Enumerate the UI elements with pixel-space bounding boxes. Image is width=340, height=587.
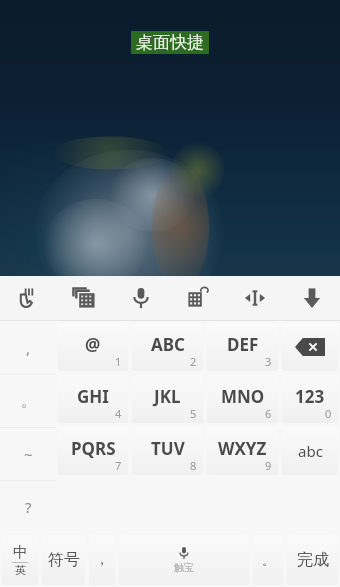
- staticText: abc: [298, 441, 323, 461]
- staticText: ABC: [151, 333, 185, 356]
- staticText: 。: [262, 552, 275, 568]
- staticText: 2: [190, 354, 197, 369]
- button[interactable]: ,: [0, 321, 56, 374]
- staticText: 完成: [297, 550, 329, 570]
- button[interactable]: Chinese English toggle: [2, 535, 38, 585]
- button[interactable]: ~: [0, 428, 56, 480]
- button[interactable]: abc: [282, 427, 338, 475]
- button[interactable]: Handwriting: [0, 276, 56, 320]
- staticText: 0: [325, 406, 332, 421]
- button[interactable]: 123: [282, 375, 338, 423]
- button[interactable]: Backspace: [282, 323, 338, 371]
- staticText: MNO: [221, 385, 265, 408]
- staticText: 桌面快捷: [136, 32, 204, 53]
- staticText: 6: [265, 406, 272, 421]
- button[interactable]: JKL: [132, 375, 203, 423]
- button[interactable]: @: [58, 323, 128, 371]
- button[interactable]: PQRS: [58, 427, 128, 475]
- button[interactable]: TUV: [132, 427, 203, 475]
- staticText: 英: [15, 563, 26, 577]
- staticText: ?: [25, 497, 32, 517]
- staticText: 9: [265, 458, 272, 473]
- button[interactable]: Space: [119, 535, 249, 585]
- staticText: ,: [26, 338, 31, 358]
- staticText: ，: [95, 551, 109, 569]
- staticText: DEF: [227, 333, 259, 356]
- staticText: 中: [13, 543, 28, 562]
- button[interactable]: 。: [0, 375, 56, 427]
- staticText: 。: [21, 392, 36, 411]
- staticText: @: [85, 333, 101, 356]
- staticText: 8: [190, 458, 197, 473]
- staticText: 触宝: [174, 561, 194, 574]
- button[interactable]: Done: [287, 535, 338, 585]
- button[interactable]: Hide keyboard: [283, 276, 340, 320]
- button[interactable]: Symbols: [42, 535, 85, 585]
- button[interactable]: DEF: [207, 323, 278, 371]
- button[interactable]: WXYZ: [207, 427, 278, 475]
- button[interactable]: Period: [253, 535, 283, 585]
- staticText: 1: [115, 354, 122, 369]
- staticText: 4: [115, 406, 122, 421]
- staticText: PQRS: [71, 437, 116, 460]
- button[interactable]: ABC: [132, 323, 203, 371]
- staticText: 5: [190, 406, 197, 421]
- staticText: 123: [295, 385, 325, 408]
- button[interactable]: Voice input: [112, 276, 169, 320]
- staticText: 3: [265, 354, 272, 369]
- button[interactable]: Change layout: [169, 276, 226, 320]
- button[interactable]: Move cursor: [226, 276, 283, 320]
- button[interactable]: Switch keyboard: [56, 276, 112, 320]
- button[interactable]: Comma: [89, 535, 115, 585]
- staticText: JKL: [154, 385, 181, 408]
- staticText: WXYZ: [218, 437, 267, 460]
- button[interactable]: ?: [0, 481, 56, 533]
- button[interactable]: GHI: [58, 375, 128, 423]
- staticText: GHI: [77, 385, 109, 408]
- button[interactable]: MNO: [207, 375, 278, 423]
- staticText: 符号: [48, 550, 80, 570]
- staticText: 7: [115, 458, 122, 473]
- staticText: ~: [24, 444, 33, 464]
- staticText: TUV: [151, 437, 185, 460]
